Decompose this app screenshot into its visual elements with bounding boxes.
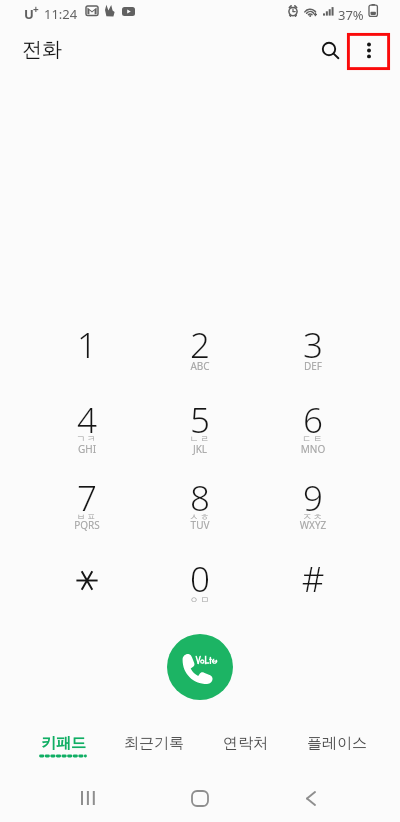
staticText: 1 bbox=[31, 321, 143, 369]
staticText: 8 bbox=[144, 474, 256, 522]
staticText: 37% bbox=[338, 6, 364, 24]
button[interactable]: 0 bbox=[144, 541, 256, 619]
staticText: 3 bbox=[257, 321, 369, 369]
staticText: WXYZ bbox=[257, 518, 369, 532]
staticText: GHI bbox=[31, 442, 143, 456]
button[interactable]: # bbox=[257, 541, 369, 619]
staticText: 9 bbox=[257, 474, 369, 522]
button[interactable]: 플레이스 bbox=[291, 712, 383, 758]
button[interactable]: 7 bbox=[31, 463, 143, 541]
staticText: ㄱㅋ bbox=[31, 433, 143, 444]
staticText: ㅂㅍ bbox=[31, 511, 143, 522]
staticText: U bbox=[24, 5, 34, 23]
button[interactable]: 2 bbox=[144, 307, 256, 385]
staticText: ㅅㅎ bbox=[144, 511, 256, 522]
button[interactable]: 1 bbox=[31, 307, 143, 385]
staticText: 전화 bbox=[22, 37, 62, 62]
staticText: ABC bbox=[144, 359, 256, 373]
staticText: DEF bbox=[257, 359, 369, 373]
button[interactable] bbox=[31, 541, 143, 619]
button[interactable]: 9 bbox=[257, 463, 369, 541]
button[interactable]: 키패드 bbox=[17, 712, 108, 758]
staticText: JKL bbox=[144, 442, 256, 456]
button[interactable]: 3 bbox=[257, 307, 369, 385]
staticText: 2 bbox=[144, 321, 256, 369]
button[interactable]: 연락처 bbox=[199, 712, 291, 758]
staticText: PQRS bbox=[31, 518, 143, 532]
button[interactable]: Search bbox=[311, 31, 347, 67]
button[interactable]: 최근기록 bbox=[108, 712, 199, 758]
staticText: 6 bbox=[257, 396, 369, 444]
staticText: MNO bbox=[257, 442, 369, 456]
staticText: ㅈㅊ bbox=[257, 511, 369, 522]
button[interactable]: 8 bbox=[144, 463, 256, 541]
staticText: # bbox=[257, 555, 369, 603]
staticText: 연락처 bbox=[223, 734, 268, 753]
button[interactable]: Back bbox=[289, 776, 333, 820]
button[interactable]: Home bbox=[178, 776, 222, 820]
staticText: 키패드 bbox=[41, 734, 86, 753]
button[interactable]: Recents bbox=[66, 776, 110, 820]
staticText: ㄴㄹ bbox=[144, 433, 256, 444]
button[interactable]: 4 bbox=[31, 385, 143, 463]
button[interactable]: More options bbox=[347, 33, 390, 70]
staticText: 11:24 bbox=[44, 5, 78, 23]
staticText: ㅇㅁ bbox=[144, 594, 256, 605]
staticText: 플레이스 bbox=[307, 734, 367, 753]
staticText: ㄷㅌ bbox=[257, 433, 369, 444]
staticText: 7 bbox=[31, 474, 143, 522]
staticText: 5 bbox=[144, 396, 256, 444]
staticText: 최근기록 bbox=[124, 734, 184, 753]
staticText: + bbox=[33, 2, 39, 16]
staticText: 4 bbox=[31, 396, 143, 444]
button[interactable]: 6 bbox=[257, 385, 369, 463]
staticText: TUV bbox=[144, 518, 256, 532]
button[interactable]: 5 bbox=[144, 385, 256, 463]
staticText: 0 bbox=[144, 555, 256, 603]
button[interactable]: Call bbox=[167, 634, 233, 700]
